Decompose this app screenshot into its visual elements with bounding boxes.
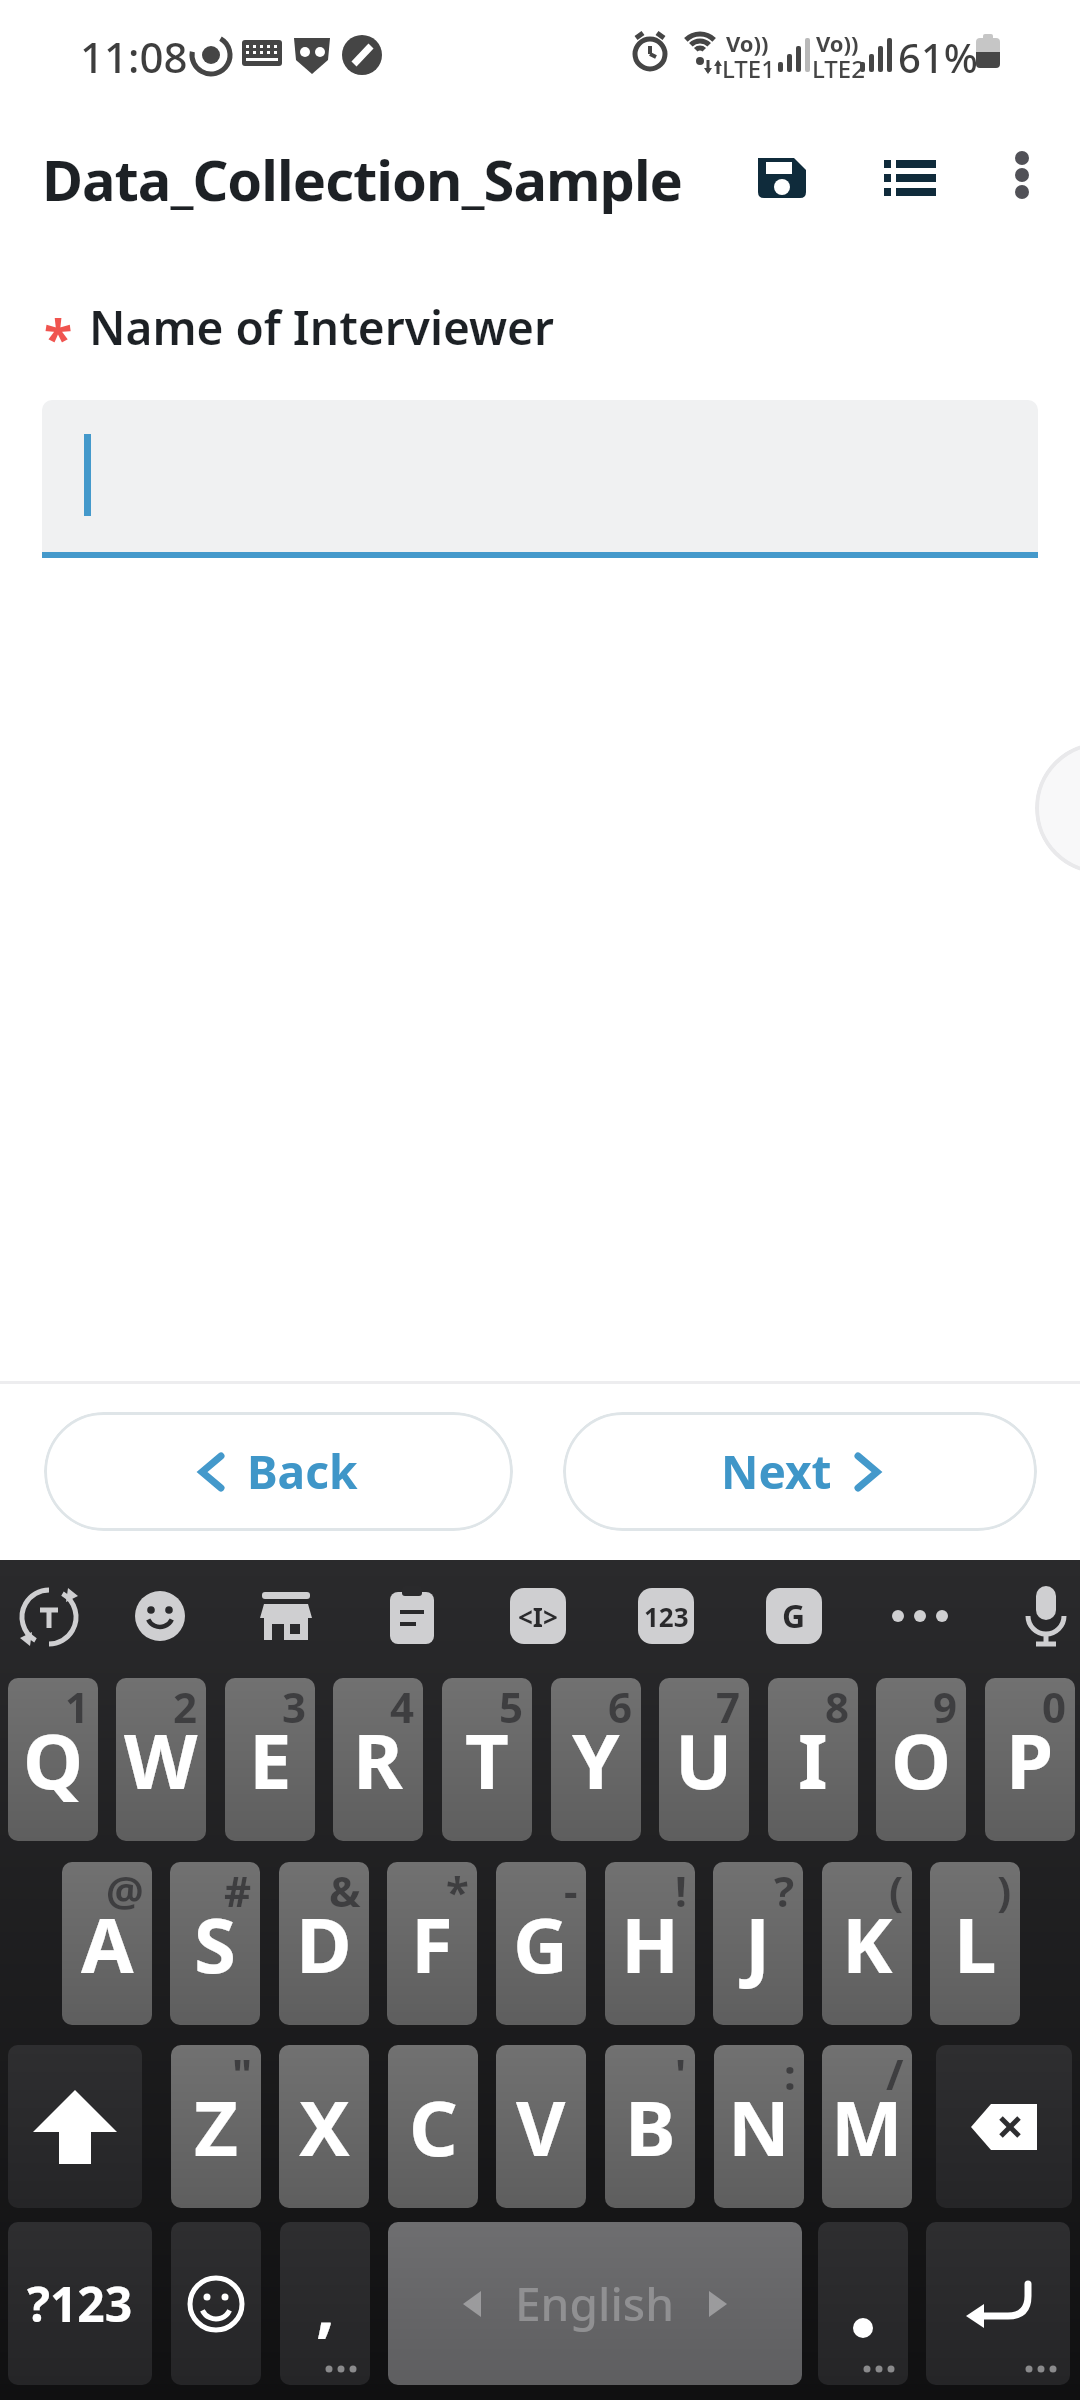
button[interactable]: J: [713, 1862, 803, 2025]
staticText: H: [621, 1892, 680, 1996]
button[interactable]: D: [279, 1862, 369, 2025]
staticText: S: [194, 1892, 236, 1996]
staticText: 9: [933, 1678, 958, 1735]
button[interactable]: [744, 136, 820, 212]
staticText: LTE2: [812, 52, 865, 85]
staticText: /: [886, 2045, 904, 2102]
staticText: L: [954, 1892, 997, 1996]
staticText: ): [997, 1862, 1012, 1919]
staticText: 11:08: [80, 28, 188, 85]
button[interactable]: [1018, 1584, 1074, 1650]
button[interactable]: [42, 400, 1038, 552]
staticText: 123: [644, 1599, 689, 1634]
button[interactable]: G: [766, 1588, 822, 1644]
staticText: 7: [716, 1678, 741, 1735]
button[interactable]: Z: [171, 2045, 261, 2208]
button[interactable]: B: [605, 2045, 695, 2208]
staticText: 2: [173, 1678, 198, 1735]
staticText: E: [249, 1708, 292, 1812]
button[interactable]: [171, 2222, 261, 2385]
staticText: ": [232, 2045, 253, 2102]
button[interactable]: [926, 2222, 1070, 2385]
button[interactable]: Back: [44, 1412, 513, 1531]
staticText: B: [625, 2075, 676, 2179]
staticText: O: [891, 1708, 952, 1812]
button[interactable]: L: [930, 1862, 1020, 2025]
staticText: 1: [65, 1678, 90, 1735]
staticText: Data_Collection_Sample: [42, 141, 683, 217]
staticText: 6: [608, 1678, 633, 1735]
button[interactable]: X: [279, 2045, 369, 2208]
staticText: 3: [282, 1678, 307, 1735]
button[interactable]: Next: [563, 1412, 1037, 1531]
staticText: Vo)): [726, 28, 769, 58]
button[interactable]: N: [714, 2045, 804, 2208]
staticText: R: [353, 1708, 403, 1812]
staticText: C: [409, 2075, 458, 2179]
staticText: 5: [499, 1678, 524, 1735]
button[interactable]: P: [985, 1678, 1075, 1841]
button[interactable]: [1035, 742, 1080, 874]
button[interactable]: O: [876, 1678, 966, 1841]
staticText: M: [831, 2075, 903, 2179]
staticText: Back: [247, 1440, 358, 1503]
button[interactable]: G: [496, 1862, 586, 2025]
button[interactable]: [8, 2045, 142, 2208]
staticText: F: [411, 1892, 453, 1996]
button[interactable]: [818, 2222, 908, 2385]
staticText: @: [106, 1862, 144, 1919]
button[interactable]: A: [62, 1862, 152, 2025]
button[interactable]: <I>: [510, 1588, 566, 1644]
button[interactable]: M: [822, 2045, 912, 2208]
button[interactable]: [134, 1590, 186, 1642]
staticText: T: [465, 1708, 509, 1812]
staticText: -: [564, 1862, 578, 1919]
staticText: P: [1006, 1708, 1054, 1812]
button[interactable]: E: [225, 1678, 315, 1841]
button[interactable]: K: [822, 1862, 912, 2025]
staticText: 61%: [898, 30, 978, 84]
button[interactable]: [888, 1604, 954, 1628]
staticText: I: [798, 1708, 828, 1812]
button[interactable]: [258, 1588, 314, 1644]
staticText: 8: [825, 1678, 850, 1735]
staticText: (: [889, 1862, 904, 1919]
staticText: ,: [316, 2259, 335, 2349]
button[interactable]: [18, 1586, 80, 1648]
button[interactable]: S: [170, 1862, 260, 2025]
button[interactable]: U: [659, 1678, 749, 1841]
button[interactable]: V: [496, 2045, 586, 2208]
staticText: Name of Interviewer: [89, 296, 554, 359]
button[interactable]: 123: [638, 1588, 694, 1644]
button[interactable]: ?123: [8, 2222, 152, 2385]
staticText: *: [446, 1862, 469, 1919]
button[interactable]: I: [768, 1678, 858, 1841]
staticText: <I>: [518, 1599, 558, 1634]
staticText: N: [728, 2075, 790, 2179]
staticText: A: [81, 1892, 134, 1996]
staticText: Z: [194, 2075, 239, 2179]
staticText: ?123: [27, 2271, 133, 2336]
button[interactable]: [872, 136, 948, 212]
button[interactable]: [936, 2045, 1072, 2208]
staticText: Q: [23, 1708, 84, 1812]
button[interactable]: [992, 136, 1056, 212]
button[interactable]: T: [442, 1678, 532, 1841]
staticText: #: [224, 1862, 252, 1919]
staticText: Y: [572, 1708, 620, 1812]
button[interactable]: R: [333, 1678, 423, 1841]
button[interactable]: W: [116, 1678, 206, 1841]
staticText: !: [675, 1862, 687, 1919]
staticText: X: [299, 2075, 350, 2179]
button[interactable]: Q: [8, 1678, 98, 1841]
button[interactable]: [386, 1586, 438, 1646]
staticText: Vo)): [816, 28, 859, 58]
staticText: &: [329, 1862, 361, 1919]
button[interactable]: C: [388, 2045, 478, 2208]
staticText: 0: [1042, 1678, 1067, 1735]
button[interactable]: English: [388, 2222, 802, 2385]
button[interactable]: H: [605, 1862, 695, 2025]
button[interactable]: ,: [280, 2222, 370, 2385]
button[interactable]: Y: [551, 1678, 641, 1841]
button[interactable]: F: [387, 1862, 477, 2025]
